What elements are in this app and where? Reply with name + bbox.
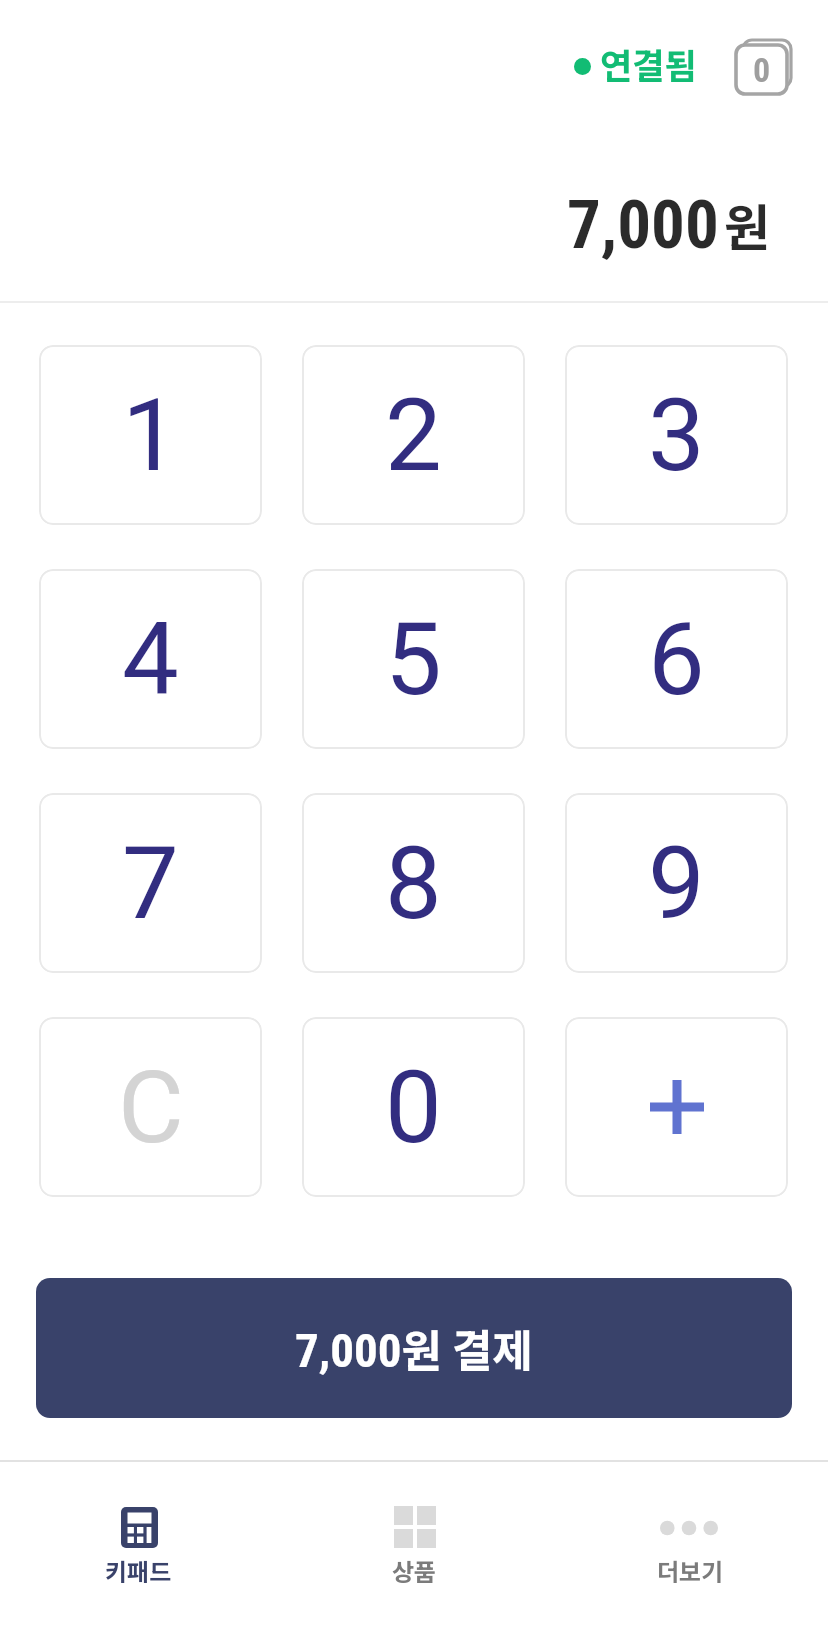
staticText: 7,000원 결제 bbox=[295, 1316, 533, 1380]
button[interactable]: 3 bbox=[565, 345, 788, 525]
staticText: 더보기 bbox=[657, 1553, 724, 1588]
staticText: 4 bbox=[122, 600, 179, 718]
button[interactable]: 0 bbox=[736, 40, 792, 95]
staticText: 0 bbox=[753, 50, 771, 90]
staticText: 원 bbox=[724, 188, 770, 260]
staticText: 8 bbox=[385, 824, 442, 942]
button[interactable]: 7 bbox=[39, 793, 262, 973]
staticText: 연결됨 bbox=[600, 38, 697, 89]
button[interactable]: 키패드 bbox=[0, 1462, 276, 1628]
staticText: 7,000 bbox=[567, 186, 719, 265]
staticText: 7 bbox=[122, 824, 179, 942]
button[interactable]: 1 bbox=[39, 345, 262, 525]
button[interactable]: 상품 bbox=[276, 1462, 552, 1628]
button[interactable]: 7,000원 결제 bbox=[36, 1278, 792, 1418]
staticText: 1 bbox=[122, 376, 179, 494]
staticText: 9 bbox=[648, 824, 705, 942]
button[interactable]: 5 bbox=[302, 569, 525, 749]
button[interactable]: 0 bbox=[302, 1017, 525, 1197]
staticText: 상품 bbox=[392, 1553, 437, 1588]
staticText: 3 bbox=[648, 376, 705, 494]
button[interactable]: C bbox=[39, 1017, 262, 1197]
staticText: 2 bbox=[385, 376, 442, 494]
button[interactable]: 더보기 bbox=[552, 1462, 828, 1628]
staticText: 키패드 bbox=[105, 1553, 172, 1588]
staticText: C bbox=[118, 1048, 184, 1166]
button[interactable] bbox=[565, 1017, 788, 1197]
staticText: 5 bbox=[385, 600, 442, 718]
button[interactable]: 6 bbox=[565, 569, 788, 749]
button[interactable]: 연결됨 bbox=[560, 36, 706, 90]
button[interactable]: 9 bbox=[565, 793, 788, 973]
button[interactable]: 8 bbox=[302, 793, 525, 973]
staticText: 6 bbox=[648, 600, 705, 718]
button[interactable]: 2 bbox=[302, 345, 525, 525]
button[interactable]: 4 bbox=[39, 569, 262, 749]
staticText: 0 bbox=[385, 1048, 442, 1166]
